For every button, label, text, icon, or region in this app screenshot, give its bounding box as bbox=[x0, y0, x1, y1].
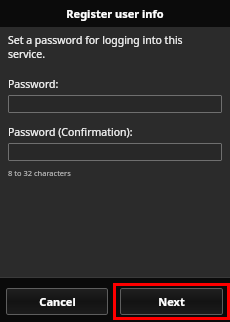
button[interactable] bbox=[8, 95, 222, 113]
staticText: Cancel bbox=[39, 294, 76, 309]
staticText: Set a password for logging into this ser… bbox=[8, 33, 183, 61]
staticText: Next bbox=[158, 294, 185, 309]
staticText: Password (Confirmation): bbox=[8, 125, 133, 139]
button[interactable]: Cancel bbox=[6, 288, 108, 315]
staticText: Password: bbox=[8, 77, 59, 91]
staticText: 8 to 32 characters bbox=[8, 168, 71, 178]
button[interactable]: Next bbox=[120, 288, 223, 315]
button[interactable] bbox=[8, 143, 222, 161]
staticText: Register user info bbox=[66, 6, 164, 21]
